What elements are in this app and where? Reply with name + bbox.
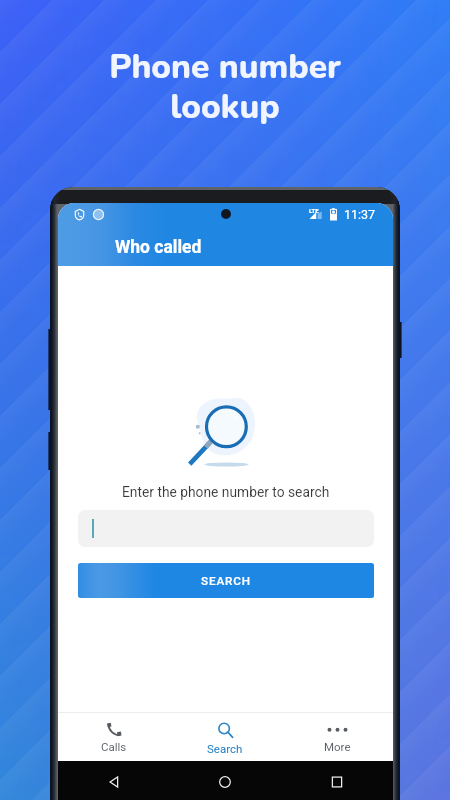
staticText: SEARCH [201,574,251,588]
staticText: LTE [309,207,319,214]
button[interactable]: Home [218,775,232,789]
button[interactable]: Search [169,713,281,755]
staticText: Search [207,742,243,755]
button[interactable]: Recents [330,775,344,789]
button[interactable] [78,510,374,547]
staticText: Calls [101,740,127,753]
button[interactable]: Back [107,775,121,789]
staticText: 11:37 [344,207,376,222]
staticText: Enter the phone number to search [122,484,330,500]
button[interactable]: More [281,713,393,753]
staticText: More [324,740,351,753]
button[interactable]: SEARCH [78,563,374,598]
staticText: Who called [115,237,202,258]
button[interactable]: Calls [58,713,169,753]
staticText: Phone number lookup [109,44,341,130]
